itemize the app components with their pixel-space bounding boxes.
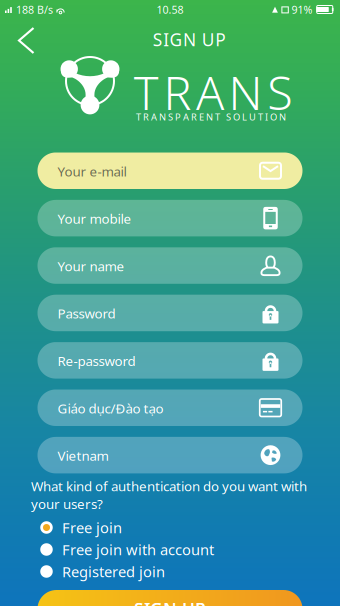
- button[interactable]: Giáo dục/Đào tạo: [37, 389, 302, 426]
- staticText: Your name: [57, 257, 124, 275]
- staticText: What kind of authentication do you want …: [31, 477, 307, 513]
- staticText: Registered join: [62, 562, 165, 581]
- staticText: Your e-mail: [57, 162, 126, 180]
- button[interactable]: Free join with account: [40, 539, 240, 560]
- staticText: Vietnam: [57, 447, 108, 464]
- button[interactable]: Your e-mail: [37, 152, 302, 189]
- staticText: 10.58: [156, 2, 183, 17]
- button[interactable]: Your mobile: [37, 200, 302, 236]
- staticText: T R A N S P A R E N T S O L U T I O N: [136, 111, 286, 123]
- button[interactable]: Vietnam: [37, 437, 302, 473]
- staticText: 188 B/s: [16, 2, 53, 17]
- button[interactable]: Registered join: [40, 561, 240, 582]
- button[interactable]: Re-password: [37, 342, 302, 379]
- button[interactable]: Free join: [40, 517, 240, 538]
- button[interactable]: SIGN UP: [37, 590, 302, 606]
- staticText: SIGN UP: [153, 28, 225, 51]
- staticText: Password: [57, 305, 115, 322]
- staticText: Giáo dục/Đào tạo: [57, 399, 163, 417]
- staticText: 91%: [291, 2, 312, 17]
- staticText: SIGN UP: [134, 597, 206, 606]
- button[interactable]: Your name: [37, 247, 302, 284]
- staticText: TRANS: [134, 61, 292, 123]
- staticText: Free join with account: [62, 540, 214, 559]
- button[interactable]: Password: [37, 295, 302, 331]
- staticText: Your mobile: [57, 210, 131, 227]
- staticText: Re-password: [57, 352, 135, 370]
- button[interactable]: Back: [5, 20, 47, 60]
- staticText: Free join: [62, 518, 122, 537]
